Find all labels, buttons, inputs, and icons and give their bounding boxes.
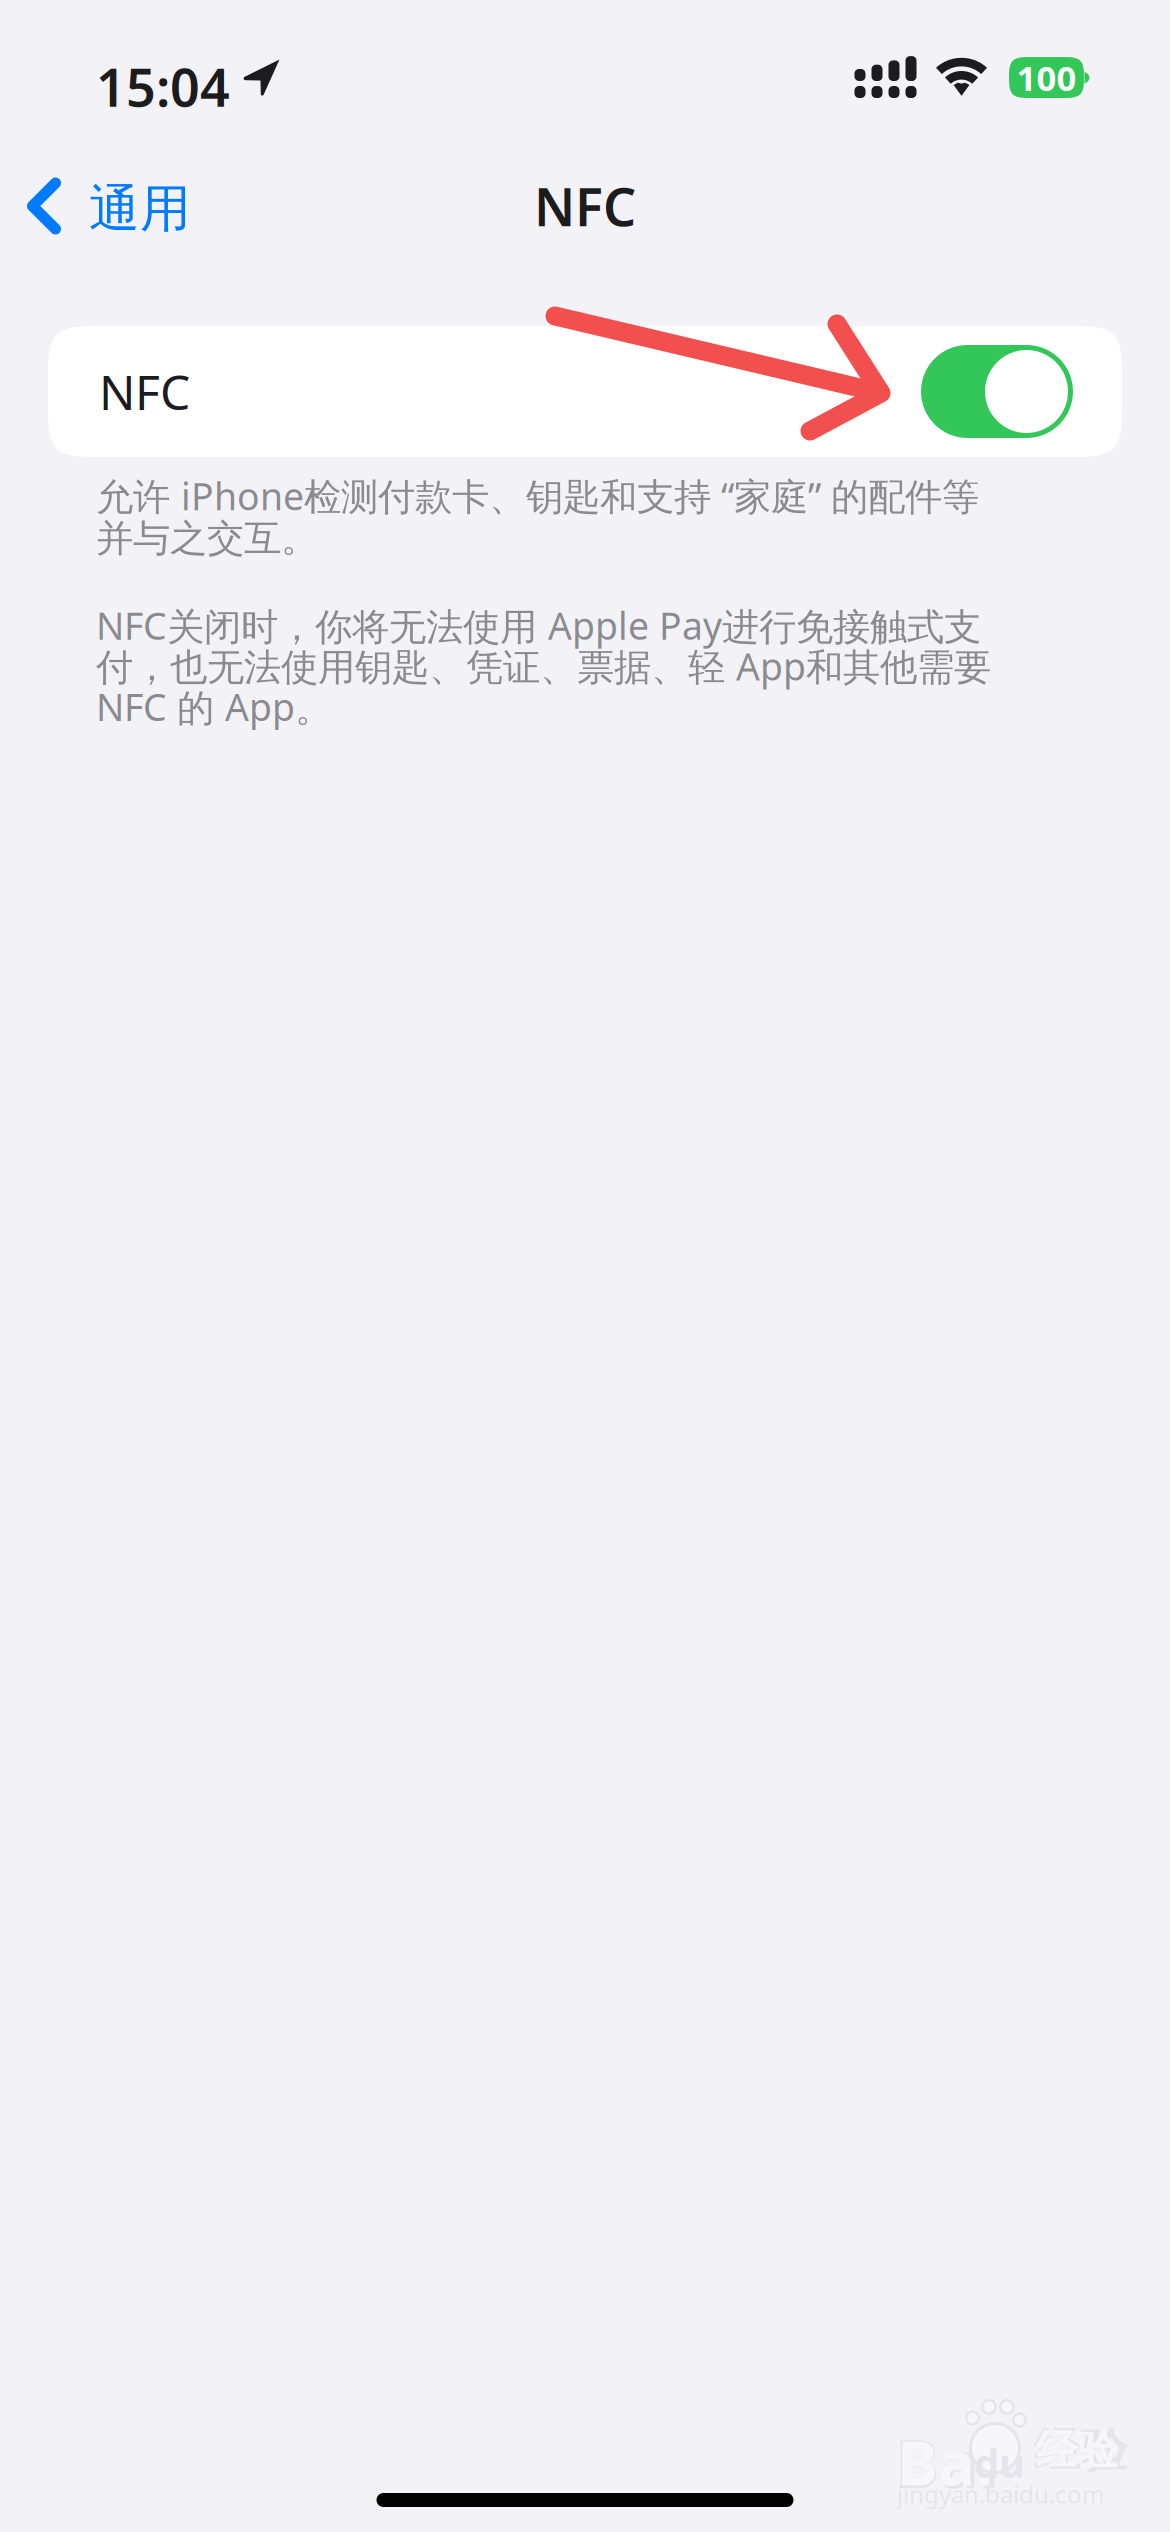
staticText: NFC [99,360,190,423]
staticText: Bai [895,2418,999,2506]
staticText: 100 [1016,54,1076,100]
staticText: du [974,2436,1025,2489]
staticText: NFC [534,171,636,241]
staticText: 允许 iPhone检测付款卡、钥匙和支持 “家庭” 的配件等 并与之交互。 [96,471,979,561]
staticText: 经验 [1034,2422,1128,2479]
button[interactable]: 通用 [0,158,215,254]
staticText: 15:04 [96,52,230,121]
staticText: NFC关闭时，你将无法使用 Apple Pay进行免接触式支 付，也无法使用钥匙… [96,600,991,731]
staticText: Bai [897,2421,993,2502]
staticText: 通用 [89,178,191,240]
button[interactable]: NFC [48,326,1122,457]
staticText: 经验 [1036,2425,1118,2476]
staticText: jingyan.baidu.com [897,2478,1104,2510]
